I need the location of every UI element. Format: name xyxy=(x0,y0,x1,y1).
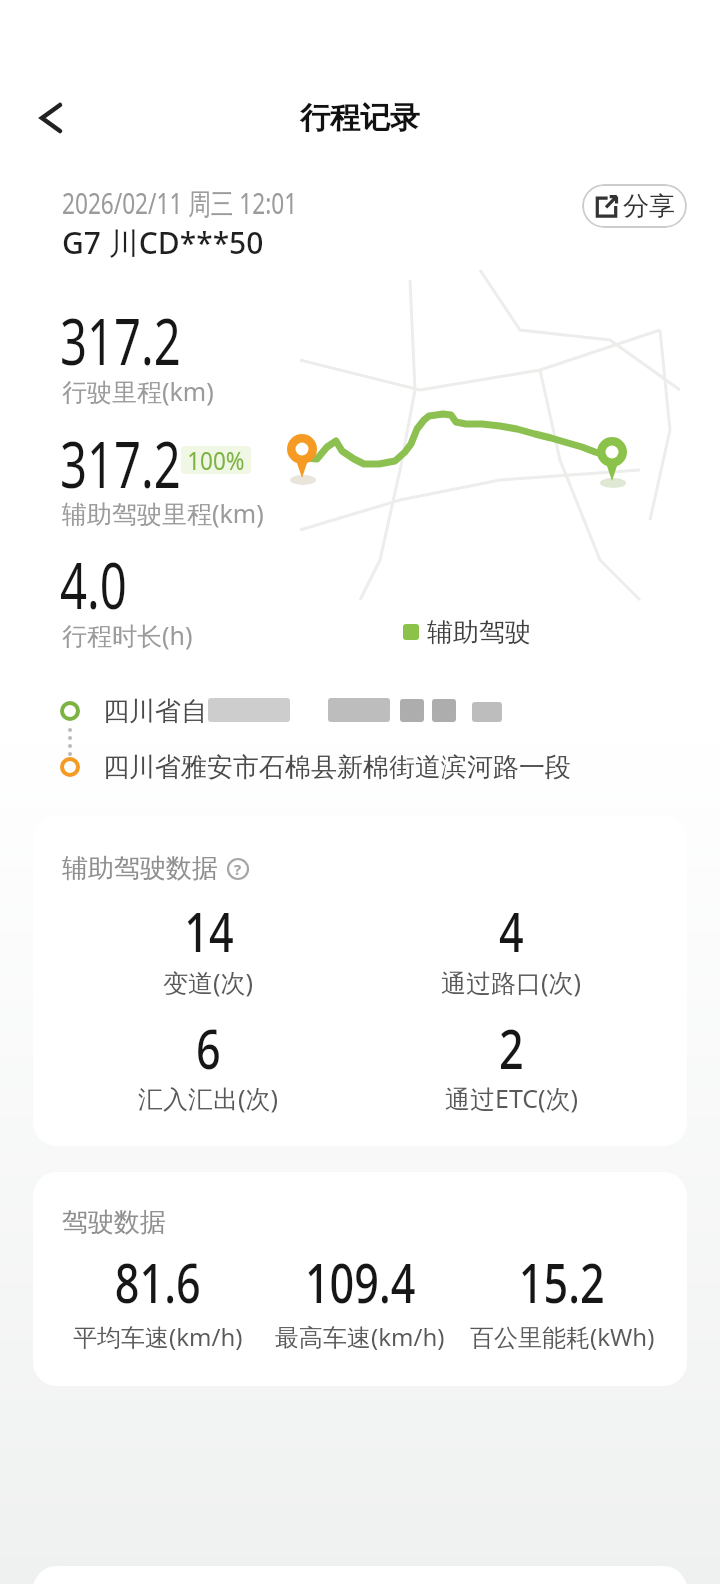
staticText: 行驶里程(km) xyxy=(62,374,214,408)
button[interactable]: 分享 xyxy=(582,184,687,228)
button[interactable]: 15.2 xyxy=(461,1254,663,1310)
staticText: 14 xyxy=(184,894,234,968)
staticText: 109.4 xyxy=(305,1245,416,1319)
button[interactable]: 14 xyxy=(57,903,360,959)
staticText: 317.2 xyxy=(60,298,181,384)
staticText: 4.0 xyxy=(60,542,127,628)
button[interactable] xyxy=(28,95,74,141)
staticText: 317.2 xyxy=(60,421,181,507)
staticText: G7 川CD***50 xyxy=(62,222,264,263)
staticText: 辅助驾驶里程(km) xyxy=(62,496,264,530)
button[interactable]: ? xyxy=(226,857,250,881)
staticText: 最高车速(km/h) xyxy=(275,1320,445,1353)
staticText: 百公里能耗(kWh) xyxy=(470,1320,655,1353)
staticText: ? xyxy=(234,859,242,879)
button[interactable]: 4 xyxy=(360,903,663,959)
staticText: 通过ETC(次) xyxy=(445,1081,579,1115)
staticText: 100% xyxy=(187,443,245,477)
button[interactable]: 6 xyxy=(57,1020,360,1076)
staticText: 15.2 xyxy=(519,1245,605,1319)
button[interactable]: 2 xyxy=(360,1020,663,1076)
staticText: 四川省自 xyxy=(103,695,207,728)
button[interactable]: 109.4 xyxy=(259,1254,461,1310)
staticText: 2026/02/11 周三 12:01 xyxy=(62,183,298,223)
staticText: 6 xyxy=(196,1011,221,1085)
staticText: 行程记录 xyxy=(300,99,420,137)
staticText: 行程时长(h) xyxy=(62,618,193,652)
staticText: 通过路口(次) xyxy=(441,965,582,999)
staticText: 四川省雅安市石棉县新棉街道滨河路一段 xyxy=(103,751,571,784)
button[interactable]: 81.6 xyxy=(57,1254,259,1310)
staticText: 汇入汇出(次) xyxy=(138,1081,279,1115)
staticText: 4 xyxy=(499,894,524,968)
staticText: 变道(次) xyxy=(163,965,254,999)
staticText: 辅助驾驶数据 xyxy=(62,852,218,885)
staticText: 81.6 xyxy=(115,1245,201,1319)
staticText: 分享 xyxy=(623,190,675,223)
staticText: 平均车速(km/h) xyxy=(73,1320,243,1353)
staticText: 2 xyxy=(499,1011,524,1085)
staticText: 辅助驾驶 xyxy=(427,616,531,649)
staticText: 驾驶数据 xyxy=(62,1206,166,1239)
